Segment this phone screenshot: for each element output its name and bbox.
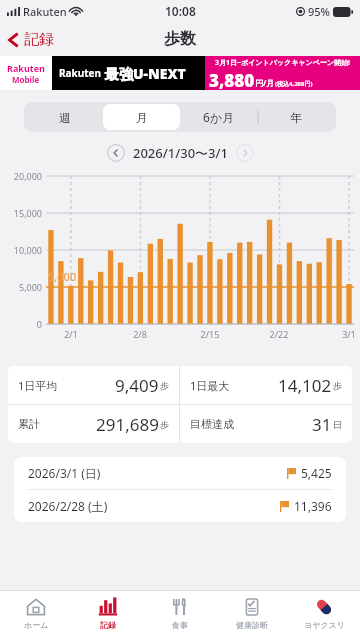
staticText: 5,000: [0, 281, 42, 293]
staticText: 0: [0, 318, 42, 330]
button[interactable]: 記録: [0, 25, 64, 54]
staticText: 5,425: [301, 465, 332, 481]
staticText: 10,000: [0, 244, 42, 256]
staticText: 月: [136, 110, 148, 125]
staticText: 3/1: [338, 328, 360, 340]
button[interactable]: 累計: [8, 405, 179, 443]
staticText: 2026/1/30〜3/1: [133, 144, 228, 162]
staticText: 食事: [172, 620, 188, 630]
staticText: ホーム: [24, 620, 49, 630]
staticText: 目標達成: [190, 417, 234, 431]
staticText: 歩数: [164, 29, 196, 49]
button[interactable]: 健康診断: [216, 591, 288, 640]
staticText: 1日平均: [18, 378, 58, 393]
staticText: 記録: [24, 30, 54, 49]
staticText: 最強U-NEXT: [105, 64, 186, 83]
button[interactable]: 6か月: [180, 104, 257, 130]
button[interactable]: ヨヤクスリ: [288, 591, 360, 640]
button[interactable]: 2026/3/1 (日): [14, 457, 346, 489]
staticText: (税込4,268円): [275, 80, 313, 88]
staticText: Rakuten: [59, 66, 102, 80]
staticText: Rakuten: [7, 62, 45, 74]
button[interactable]: 目標達成: [180, 405, 352, 443]
staticText: 95%: [308, 4, 330, 19]
staticText: 記録: [100, 620, 116, 630]
button[interactable]: 月: [103, 104, 180, 130]
staticText: Rakuten: [23, 4, 67, 19]
staticText: 歩: [160, 380, 169, 391]
button[interactable]: 1日最大: [180, 366, 352, 404]
staticText: 円/月: [255, 77, 275, 88]
staticText: ヨヤクスリ: [304, 620, 345, 630]
staticText: 6か月: [203, 109, 235, 125]
staticText: 31: [312, 413, 332, 436]
button[interactable]: 年: [257, 104, 334, 130]
staticText: 14,102: [278, 374, 332, 397]
staticText: 歩: [160, 419, 169, 430]
staticText: Mobile: [12, 74, 40, 85]
staticText: 歩: [333, 380, 342, 391]
staticText: 2/22: [268, 328, 290, 340]
button[interactable]: 週: [26, 104, 103, 130]
staticText: 日: [333, 419, 342, 430]
staticText: 2026/3/1 (日): [28, 465, 101, 481]
staticText: 5,000: [48, 269, 77, 284]
staticText: 2/8: [129, 328, 151, 340]
staticText: 9,409: [115, 374, 159, 397]
staticText: 2026/2/28 (土): [28, 498, 108, 514]
staticText: 3,880: [209, 69, 255, 90]
button[interactable]: 次の期間: [234, 142, 256, 164]
button[interactable]: 記録: [72, 591, 144, 640]
staticText: 15,000: [0, 207, 42, 219]
button[interactable]: Rakuten Mobile 広告: [0, 56, 360, 90]
button[interactable]: 食事: [144, 591, 216, 640]
button[interactable]: 2026/2/28 (土): [14, 490, 346, 522]
staticText: 10:08: [165, 3, 196, 19]
staticText: 20,000: [0, 170, 42, 182]
staticText: 1日最大: [190, 378, 230, 393]
button[interactable]: 1日平均: [8, 366, 179, 404]
staticText: 健康診断: [236, 620, 268, 630]
button[interactable]: ホーム: [0, 591, 72, 640]
staticText: 年: [290, 110, 302, 125]
staticText: 3月1日~ポイントバックキャンペーン開始!: [215, 58, 350, 68]
staticText: 2/1: [60, 328, 82, 340]
staticText: 291,689: [96, 413, 159, 436]
staticText: 週: [59, 110, 71, 125]
staticText: 11,396: [294, 498, 332, 514]
button[interactable]: 前の期間: [105, 142, 127, 164]
staticText: 累計: [18, 417, 40, 431]
staticText: 2/15: [199, 328, 221, 340]
